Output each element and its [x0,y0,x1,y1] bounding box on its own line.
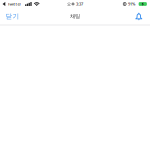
staticText: 닫기 [5,12,19,20]
staticText: Twitter [7,1,21,7]
staticText: 91% [128,1,135,7]
button[interactable]: Notifications [135,12,142,20]
button[interactable]: 닫기 [5,12,19,20]
staticText: 오후 3:37 [67,1,83,7]
staticText: 채팅 [70,13,80,20]
